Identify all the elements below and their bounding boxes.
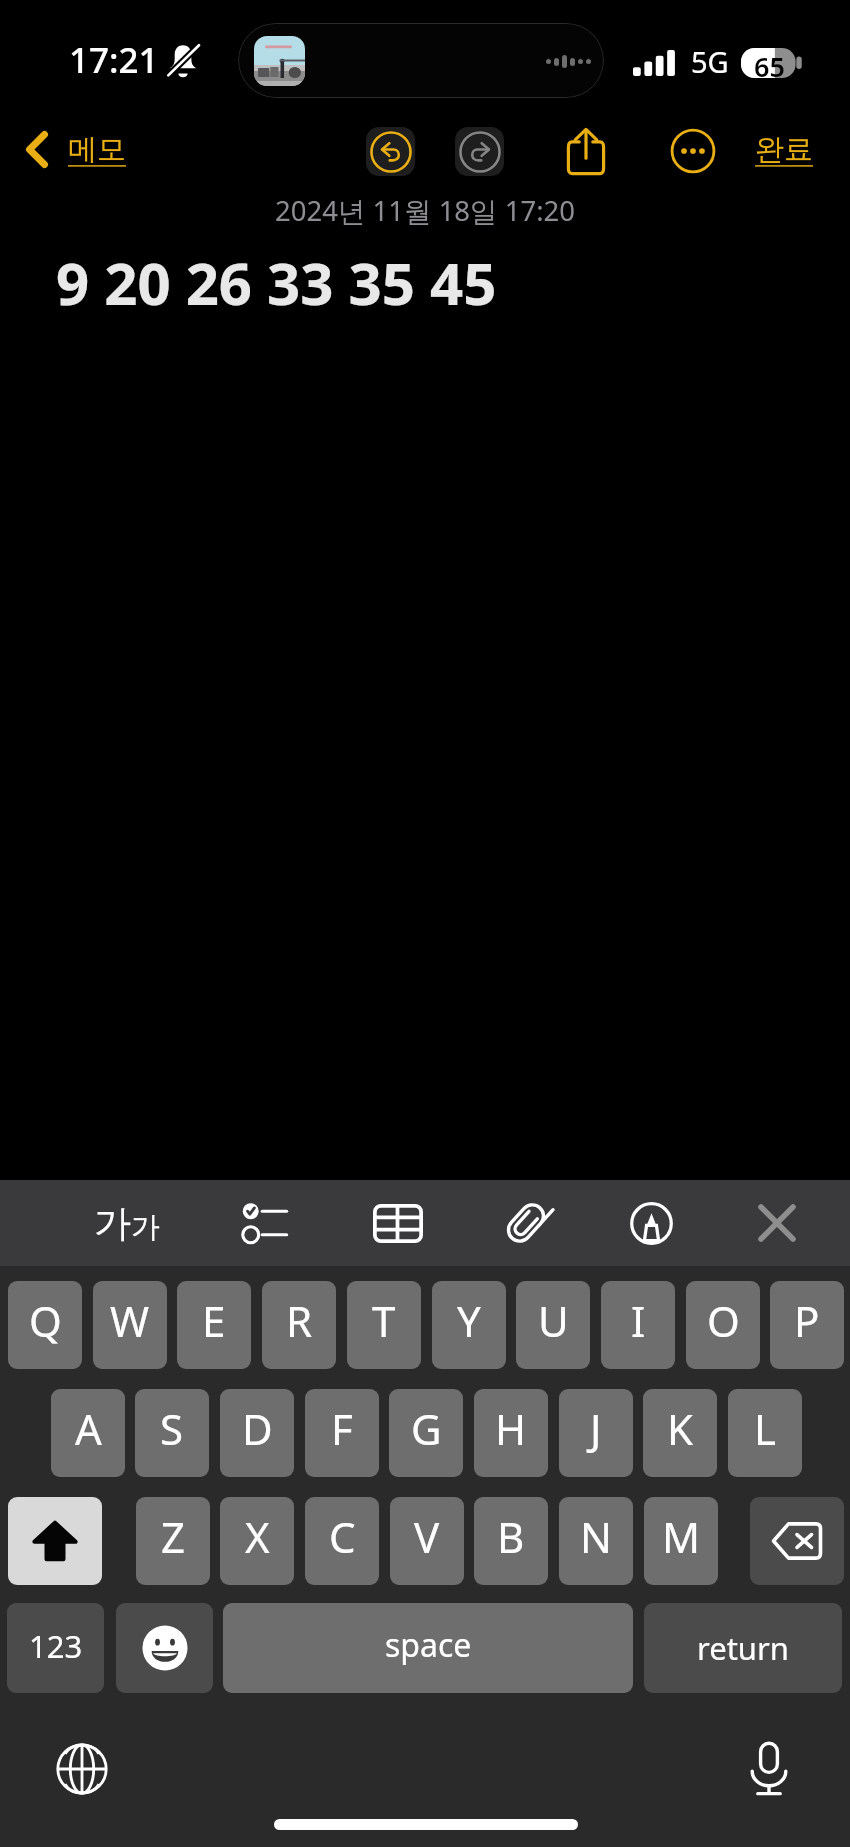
button[interactable]: Y	[432, 1281, 506, 1369]
staticText: Z	[161, 1508, 186, 1565]
button[interactable]: Shift	[8, 1497, 102, 1585]
button[interactable]: return	[644, 1603, 842, 1693]
button[interactable]: Redo	[455, 127, 504, 176]
staticText: space	[385, 1623, 472, 1667]
button[interactable]: D	[220, 1389, 294, 1477]
button[interactable]: O	[686, 1281, 760, 1369]
button[interactable]: Undo	[366, 127, 415, 176]
button[interactable]: T	[347, 1281, 421, 1369]
button[interactable]: V	[390, 1497, 464, 1585]
staticText: 가	[131, 1209, 160, 1246]
button[interactable]: Z	[136, 1497, 210, 1585]
staticText: 메모	[68, 131, 126, 168]
button[interactable]: H	[474, 1389, 548, 1477]
button[interactable]: G	[389, 1389, 463, 1477]
button[interactable]: S	[135, 1389, 209, 1477]
button[interactable]: C	[305, 1497, 379, 1585]
staticText: P	[794, 1292, 820, 1349]
staticText: 5G	[691, 42, 729, 81]
button[interactable]: Next keyboard	[52, 1739, 112, 1799]
staticText: G	[411, 1400, 442, 1457]
staticText: B	[497, 1508, 525, 1565]
button[interactable]: 123	[7, 1603, 104, 1693]
button[interactable]: Table	[356, 1190, 440, 1256]
staticText: 123	[29, 1625, 83, 1667]
staticText: S	[160, 1400, 184, 1457]
button[interactable]: B	[474, 1497, 548, 1585]
staticText: F	[331, 1400, 353, 1457]
button[interactable]: Checklist	[223, 1190, 307, 1256]
staticText: 65	[754, 48, 785, 78]
staticText: C	[329, 1508, 356, 1565]
button[interactable]: Share	[556, 121, 616, 181]
staticText: L	[754, 1400, 777, 1457]
staticText: K	[667, 1400, 693, 1457]
staticText: R	[286, 1292, 313, 1349]
button[interactable]: Q	[8, 1281, 82, 1369]
button[interactable]: Dictate	[739, 1739, 799, 1799]
button[interactable]: More options	[663, 121, 723, 181]
staticText: H	[495, 1400, 527, 1457]
staticText: 완료	[755, 131, 813, 168]
staticText: X	[245, 1508, 270, 1565]
button[interactable]: 완료	[745, 131, 823, 168]
button[interactable]: F	[305, 1389, 379, 1477]
staticText: Y	[457, 1292, 481, 1349]
staticText: N	[580, 1508, 612, 1565]
staticText: return	[697, 1627, 789, 1669]
button[interactable]: Backspace	[750, 1497, 844, 1585]
staticText: U	[538, 1292, 569, 1349]
button[interactable]: 메모	[0, 131, 134, 168]
button[interactable]: W	[93, 1281, 167, 1369]
staticText: D	[242, 1400, 273, 1457]
button[interactable]: Emoji	[116, 1603, 213, 1693]
staticText: 가	[94, 1200, 131, 1247]
staticText: A	[75, 1400, 102, 1457]
staticText: W	[110, 1292, 150, 1349]
staticText: T	[372, 1292, 396, 1349]
staticText: E	[202, 1292, 226, 1349]
staticText: V	[414, 1508, 440, 1565]
button[interactable]: space	[223, 1603, 633, 1693]
button[interactable]: 가	[85, 1190, 169, 1256]
staticText: J	[590, 1400, 602, 1457]
button[interactable]: Attach	[484, 1190, 568, 1256]
button[interactable]: E	[177, 1281, 251, 1369]
button[interactable]: I	[601, 1281, 675, 1369]
button[interactable]: Markup	[609, 1190, 693, 1256]
button[interactable]: U	[516, 1281, 590, 1369]
button[interactable]: L	[728, 1389, 802, 1477]
staticText: O	[707, 1292, 740, 1349]
button[interactable]: M	[644, 1497, 718, 1585]
staticText: I	[631, 1292, 646, 1349]
button[interactable]: P	[770, 1281, 844, 1369]
button[interactable]: X	[220, 1497, 294, 1585]
staticText: 9 20 26 33 35 45	[56, 243, 497, 322]
staticText: 2024년 11월 18일 17:20	[0, 192, 850, 230]
staticText: 17:21	[69, 36, 159, 84]
staticText: M	[662, 1508, 701, 1565]
button[interactable]: J	[559, 1389, 633, 1477]
button[interactable]: K	[643, 1389, 717, 1477]
button[interactable]: R	[262, 1281, 336, 1369]
button[interactable]: A	[51, 1389, 125, 1477]
button[interactable]: Close keyboard	[735, 1190, 819, 1256]
button[interactable]: N	[559, 1497, 633, 1585]
staticText: Q	[29, 1292, 62, 1349]
